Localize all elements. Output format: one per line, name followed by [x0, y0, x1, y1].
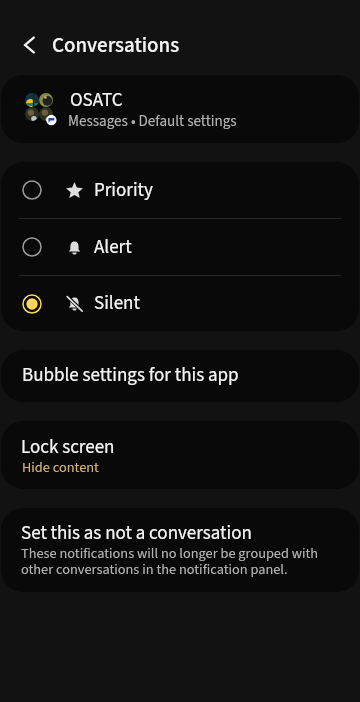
staticText: These notifications will no longer be gr… — [21, 543, 319, 579]
button[interactable]: Silent — [1, 276, 359, 331]
staticText: Conversations — [52, 30, 180, 60]
button[interactable]: Priority — [1, 162, 359, 331]
staticText: Bubble settings for this app — [22, 362, 239, 389]
button[interactable]: Lock screen — [1, 421, 359, 489]
staticText: Set this as not a conversation — [21, 520, 252, 547]
staticText: Alert — [94, 234, 132, 261]
button[interactable]: Set this as not a conversation — [1, 508, 359, 592]
staticText: Hide content — [22, 457, 99, 477]
staticText: Messages • Default settings — [68, 111, 237, 133]
button[interactable]: Bubble settings for this app — [1, 350, 359, 402]
button[interactable]: Alert — [1, 219, 359, 275]
button[interactable]: OSATC — [1, 75, 359, 143]
button[interactable]: Back — [15, 31, 43, 59]
staticText: Silent — [94, 290, 140, 317]
staticText: OSATC — [70, 87, 123, 114]
staticText: Priority — [94, 177, 153, 204]
staticText: Lock screen — [21, 434, 115, 461]
button[interactable]: Priority — [1, 162, 359, 218]
